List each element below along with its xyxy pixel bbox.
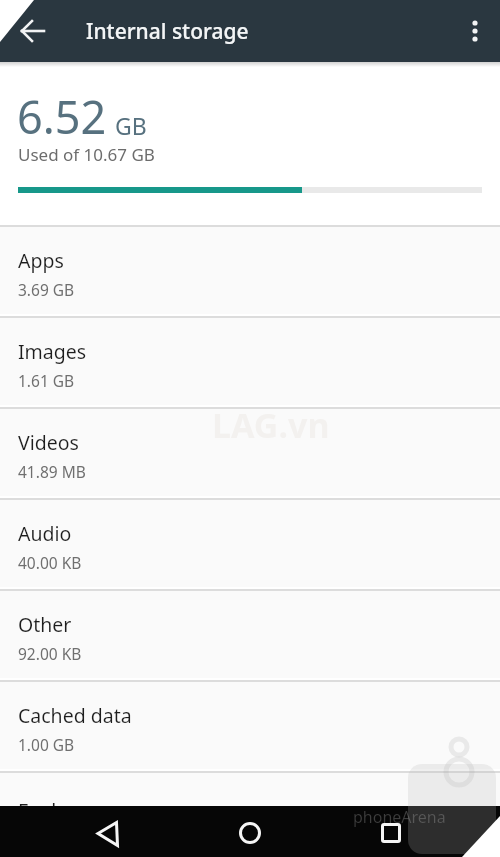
staticText: Used of 10.67 GB — [18, 143, 155, 166]
button[interactable] — [11, 9, 55, 53]
staticText: Cached data — [18, 702, 132, 729]
staticText: Explore — [18, 797, 87, 824]
button[interactable]: Videos — [0, 407, 500, 498]
button[interactable]: Images — [0, 316, 500, 407]
staticText: Images — [18, 338, 87, 365]
button[interactable]: Cached data — [0, 680, 500, 771]
staticText: Internal storage — [86, 17, 249, 46]
staticText: Other — [18, 611, 72, 638]
staticText: 6.52 — [17, 86, 107, 147]
staticText: 1.61 GB — [18, 370, 75, 391]
staticText: 92.00 KB — [18, 643, 82, 664]
staticText: Videos — [18, 429, 79, 456]
staticText: 41.89 MB — [18, 461, 86, 482]
button[interactable] — [368, 810, 414, 856]
button[interactable]: Apps — [0, 225, 500, 316]
button[interactable] — [453, 9, 497, 53]
staticText: 3.69 GB — [18, 279, 75, 300]
staticText: Audio — [18, 520, 72, 547]
staticText: GB — [115, 110, 147, 141]
button[interactable]: Other — [0, 589, 500, 680]
staticText: phoneArena — [353, 806, 446, 828]
staticText: 40.00 KB — [18, 552, 82, 573]
staticText: 1.00 GB — [18, 734, 75, 755]
button[interactable] — [84, 810, 130, 856]
staticText: Apps — [18, 247, 64, 274]
staticText: LAG.vn — [212, 402, 330, 448]
button[interactable] — [227, 810, 273, 856]
button[interactable]: Explore — [0, 771, 500, 857]
button[interactable]: Audio — [0, 498, 500, 589]
